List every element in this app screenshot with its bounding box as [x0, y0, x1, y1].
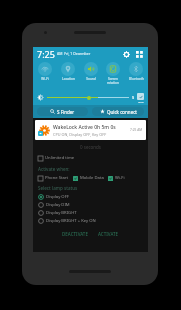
button[interactable]: Wi-Fi [34, 60, 56, 81]
staticText: 0 seconds [38, 144, 143, 150]
button[interactable]: Display DIM [38, 201, 143, 209]
staticText: Mobile Data [80, 175, 104, 181]
staticText: Display BRIGHT + Key ON [46, 218, 96, 224]
staticText: Select lamp status [38, 185, 78, 191]
button[interactable]: Mobile Data [73, 174, 104, 182]
staticText: Auto [138, 100, 144, 103]
staticText: Display OFF [46, 194, 69, 200]
button[interactable]: DEACTIVATE [59, 230, 91, 238]
button[interactable]: WakeLock Active 0h 5m 0s [35, 120, 146, 140]
staticText: Display DIM [46, 202, 70, 208]
staticText: WakeLock Active 0h 5m 0s [53, 124, 116, 131]
button[interactable]: ACTIVATE [95, 230, 122, 238]
button[interactable]: Screen rotation [102, 60, 124, 85]
button[interactable]: Unlimited time [38, 154, 75, 162]
button[interactable]: Display OFF [38, 193, 143, 201]
staticText: Sound [86, 77, 96, 81]
button[interactable]: Settings [121, 49, 131, 59]
button[interactable]: S Finder [37, 107, 88, 116]
button[interactable]: Edit quick settings [134, 49, 144, 59]
button[interactable]: Auto brightness [137, 93, 144, 100]
staticText: ACTIVATE [98, 231, 119, 237]
staticText: Display BRIGHT [46, 210, 77, 216]
staticText: Quick connect [107, 109, 137, 115]
staticText: Activate when: [38, 166, 70, 172]
staticText: S Finder [57, 109, 75, 115]
staticText: 7:25 AM [130, 128, 143, 132]
button[interactable]: Sound [80, 60, 102, 81]
staticText: Phone Start [45, 175, 69, 181]
button[interactable]: Display BRIGHT [38, 209, 143, 217]
staticText: Screen rotation [107, 77, 119, 85]
button[interactable]: Phone Start [38, 174, 69, 182]
button[interactable]: Wi-Fi [108, 174, 125, 182]
staticText: Wi-Fi [41, 77, 49, 81]
button[interactable]: Quick connect [92, 107, 144, 116]
staticText: AM Fri, 1 December [57, 51, 91, 56]
button[interactable]: Brightness [87, 96, 91, 100]
button[interactable]: Location [57, 60, 79, 81]
staticText: Unlimited time [45, 155, 75, 161]
button[interactable]: Bluetooth [125, 60, 147, 81]
staticText: 7:25 [37, 48, 55, 60]
staticText: Wi-Fi [115, 175, 125, 181]
staticText: CPU ON, Display OFF, Key OFF [53, 132, 107, 137]
button[interactable]: Display BRIGHT + Key ON [38, 217, 143, 225]
staticText: Bluetooth [129, 77, 144, 81]
staticText: Location [62, 77, 75, 81]
staticText: DEACTIVATE [62, 231, 88, 237]
staticText: S [132, 95, 135, 100]
